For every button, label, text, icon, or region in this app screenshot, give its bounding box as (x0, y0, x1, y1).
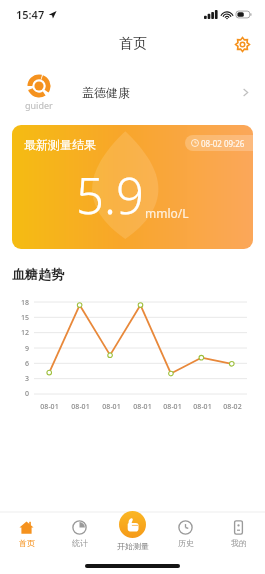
button[interactable]: 最新测量结果 (12, 125, 253, 249)
staticText: 血糖趋势 (12, 266, 64, 282)
staticText: 15 (21, 313, 30, 322)
staticText: 08-01 (163, 402, 182, 412)
staticText: 08-01 (102, 402, 121, 412)
button[interactable]: guider (0, 68, 265, 116)
staticText: guider (25, 99, 53, 111)
staticText: 首页 (119, 35, 147, 53)
staticText: 9 (25, 344, 30, 353)
staticText: mmlo/L (145, 205, 189, 221)
staticText: 08-02 09:26 (201, 138, 245, 149)
staticText: 盖德健康 (82, 85, 130, 100)
staticText: 最新测量结果 (24, 137, 96, 152)
staticText: 5.9 (76, 162, 144, 229)
staticText: 08-01 (40, 402, 59, 412)
button[interactable]: 统计 (53, 516, 106, 548)
staticText: 我的 (231, 538, 247, 548)
button[interactable]: 历史 (159, 516, 212, 548)
staticText: 6 (25, 359, 30, 368)
staticText: 首页 (19, 538, 35, 548)
staticText: 08-01 (133, 402, 152, 412)
staticText: 15:47 (16, 7, 45, 22)
staticText: 08-02 (223, 402, 242, 412)
button[interactable]: 18 (12, 292, 253, 420)
staticText: 开始测量 (117, 541, 149, 551)
button[interactable]: Settings (232, 34, 252, 54)
staticText: 08-01 (71, 402, 90, 412)
staticText: 18 (21, 298, 30, 307)
staticText: 历史 (178, 538, 194, 548)
staticText: 08-01 (193, 402, 212, 412)
button[interactable]: 开始测量 (106, 516, 159, 556)
staticText: 统计 (72, 538, 88, 548)
button[interactable]: 首页 (0, 516, 53, 548)
staticText: 0 (25, 389, 30, 398)
staticText: 12 (21, 328, 30, 337)
staticText: 3 (25, 374, 30, 383)
button[interactable]: 我的 (212, 516, 265, 548)
